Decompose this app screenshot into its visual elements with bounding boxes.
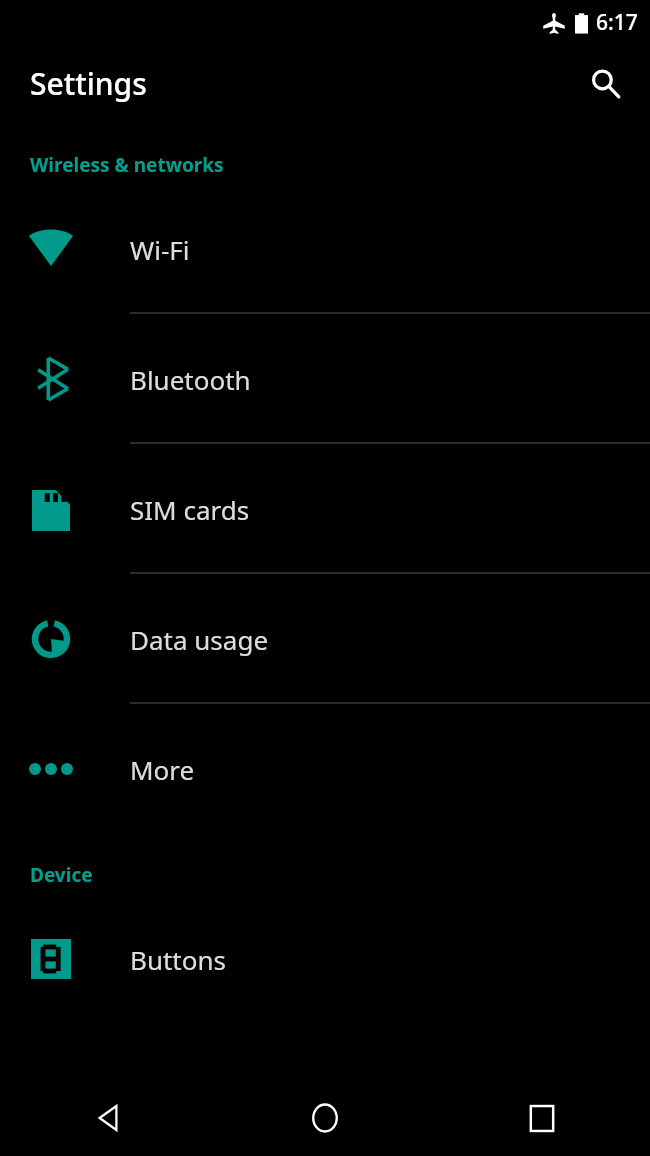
staticText: SIM cards: [130, 492, 250, 527]
staticText: Data usage: [130, 622, 269, 657]
staticText: Wi-Fi: [130, 232, 190, 267]
button[interactable]: Bluetooth: [0, 314, 650, 444]
staticText: Wireless & networks: [30, 152, 224, 178]
staticText: Bluetooth: [130, 362, 251, 397]
button[interactable]: Home: [216, 1080, 433, 1156]
button[interactable]: Back: [0, 1080, 216, 1156]
button[interactable]: Search: [579, 57, 631, 109]
button[interactable]: Wi-Fi: [0, 184, 650, 314]
button[interactable]: Data usage: [0, 574, 650, 704]
staticText: Device: [30, 862, 93, 888]
staticText: Buttons: [130, 942, 226, 977]
staticText: Settings: [30, 63, 147, 104]
button[interactable]: Recents: [433, 1080, 650, 1156]
staticText: 6:17: [596, 8, 638, 37]
button[interactable]: SIM cards: [0, 444, 650, 574]
button[interactable]: More: [0, 704, 650, 834]
button[interactable]: Buttons: [0, 894, 650, 1024]
staticText: More: [130, 752, 195, 787]
